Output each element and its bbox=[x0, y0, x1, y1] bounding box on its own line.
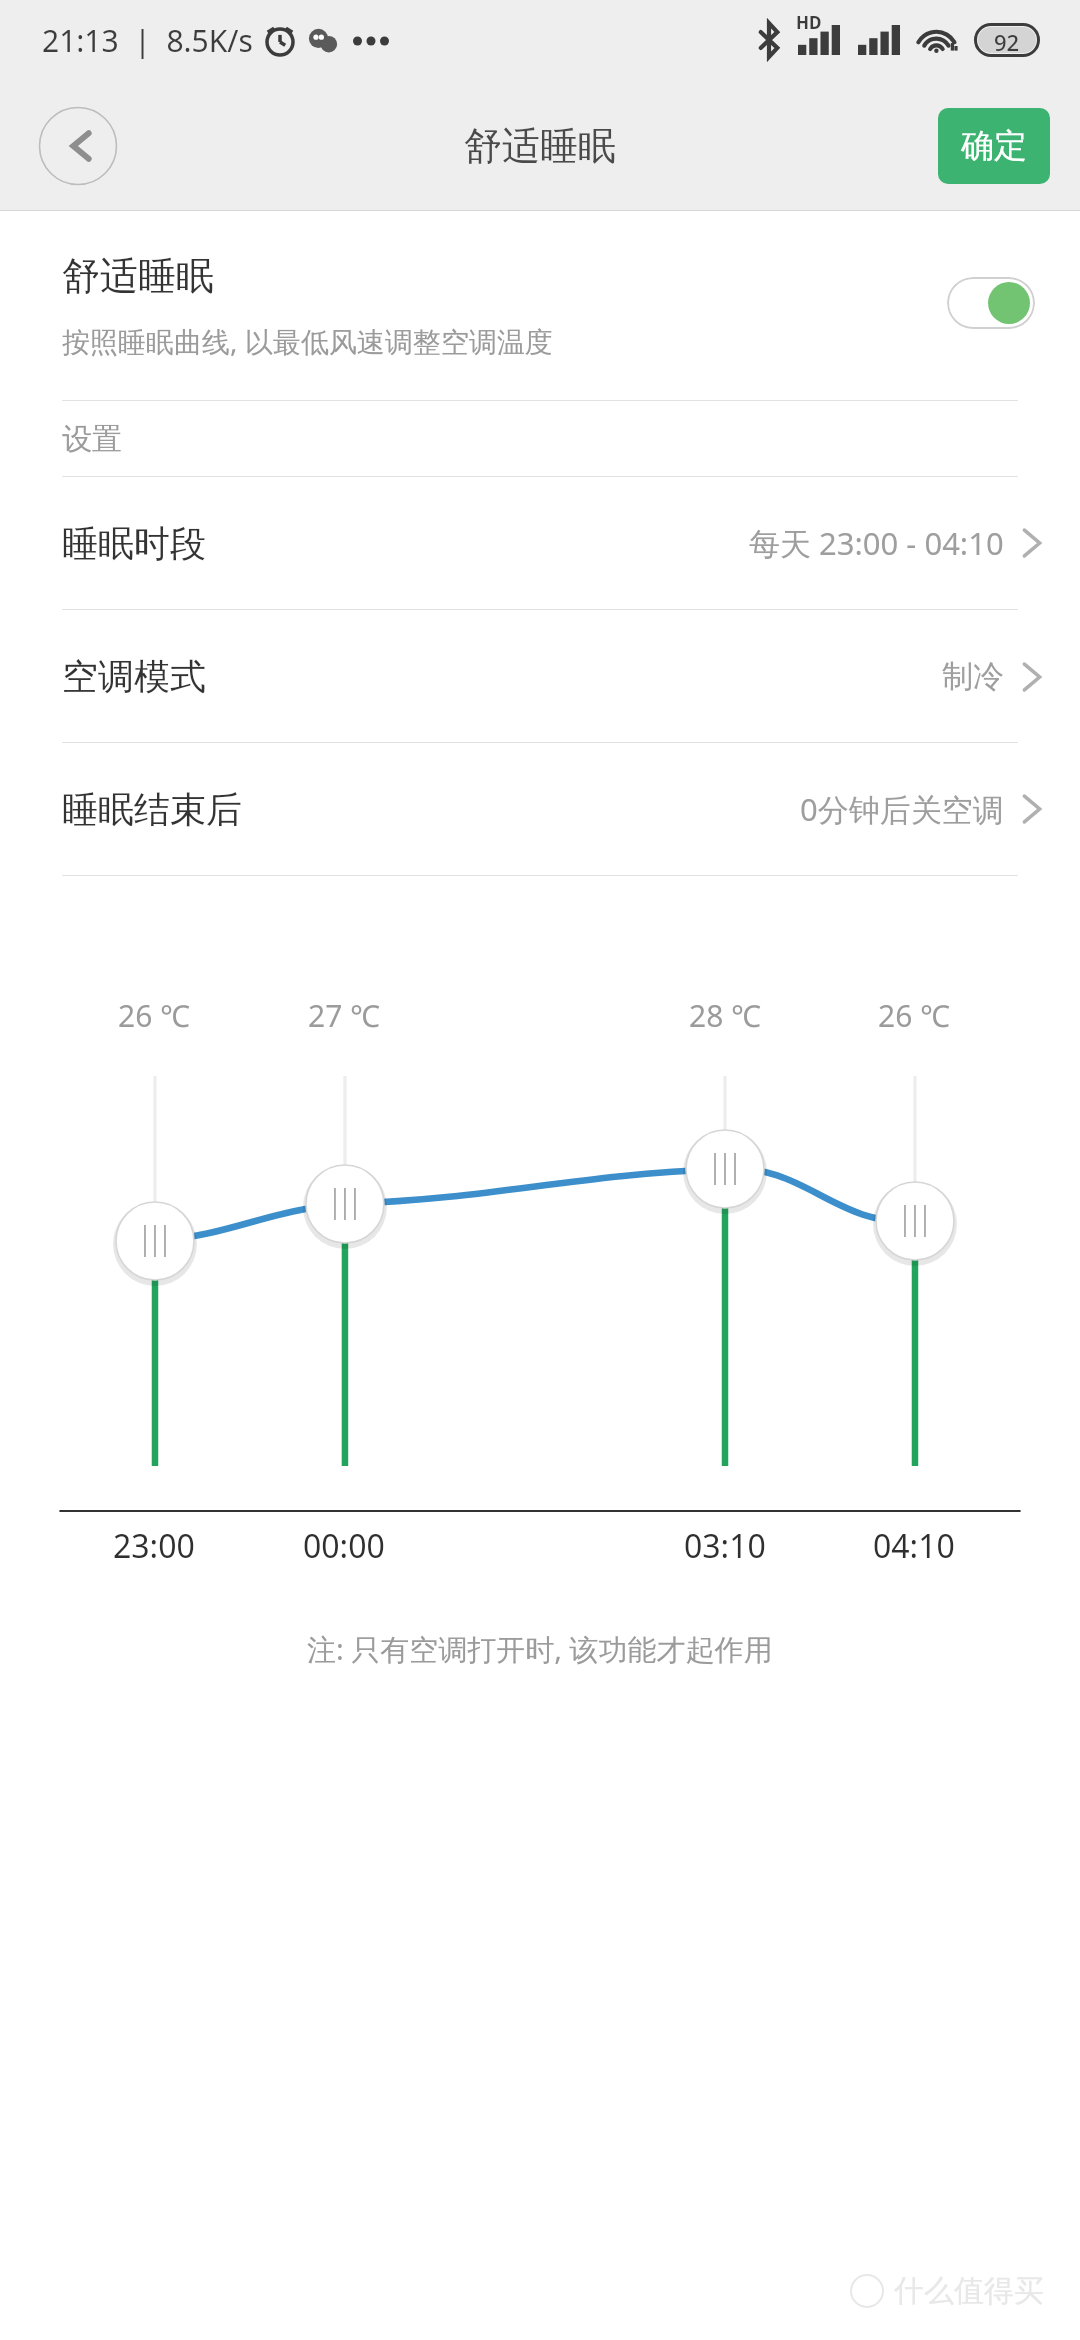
staticText: 26 ℃ bbox=[878, 995, 950, 1036]
staticText: 00:00 bbox=[303, 1524, 385, 1568]
staticText: 04:10 bbox=[873, 1524, 955, 1568]
button[interactable]: Back bbox=[38, 106, 118, 186]
button[interactable] bbox=[947, 277, 1035, 329]
button[interactable]: 睡眠结束后 bbox=[0, 743, 1080, 875]
staticText: 睡眠时段 bbox=[62, 521, 206, 566]
staticText: 确定 bbox=[961, 125, 1027, 167]
button[interactable]: 确定 bbox=[938, 108, 1050, 184]
staticText: HD bbox=[796, 11, 822, 34]
staticText: 按照睡眠曲线, 以最低风速调整空调温度 bbox=[62, 322, 553, 360]
staticText: 92 bbox=[994, 27, 1020, 53]
staticText: 28 ℃ bbox=[689, 995, 761, 1036]
staticText: 0分钟后关空调 bbox=[800, 788, 1004, 830]
staticText: 每天 23:00 - 04:10 bbox=[749, 522, 1004, 564]
staticText: 注: 只有空调打开时, 该功能才起作用 bbox=[307, 1629, 773, 1669]
staticText: 设置 bbox=[62, 420, 122, 458]
staticText: 27 ℃ bbox=[308, 995, 380, 1036]
staticText: 舒适睡眠 bbox=[464, 122, 616, 170]
staticText: 21:13 | 8.5K/s bbox=[42, 20, 253, 61]
staticText: 26 ℃ bbox=[118, 995, 190, 1036]
button[interactable]: 睡眠时段 bbox=[0, 477, 1080, 609]
button[interactable]: 空调模式 bbox=[0, 610, 1080, 742]
staticText: 舒适睡眠 bbox=[62, 252, 214, 300]
staticText: 制冷 bbox=[942, 657, 1004, 696]
staticText: 23:00 bbox=[113, 1524, 195, 1568]
staticText: 什么值得买 bbox=[894, 2272, 1044, 2310]
staticText: 睡眠结束后 bbox=[62, 787, 242, 832]
staticText: 空调模式 bbox=[62, 654, 206, 699]
staticText: 03:10 bbox=[684, 1524, 766, 1568]
